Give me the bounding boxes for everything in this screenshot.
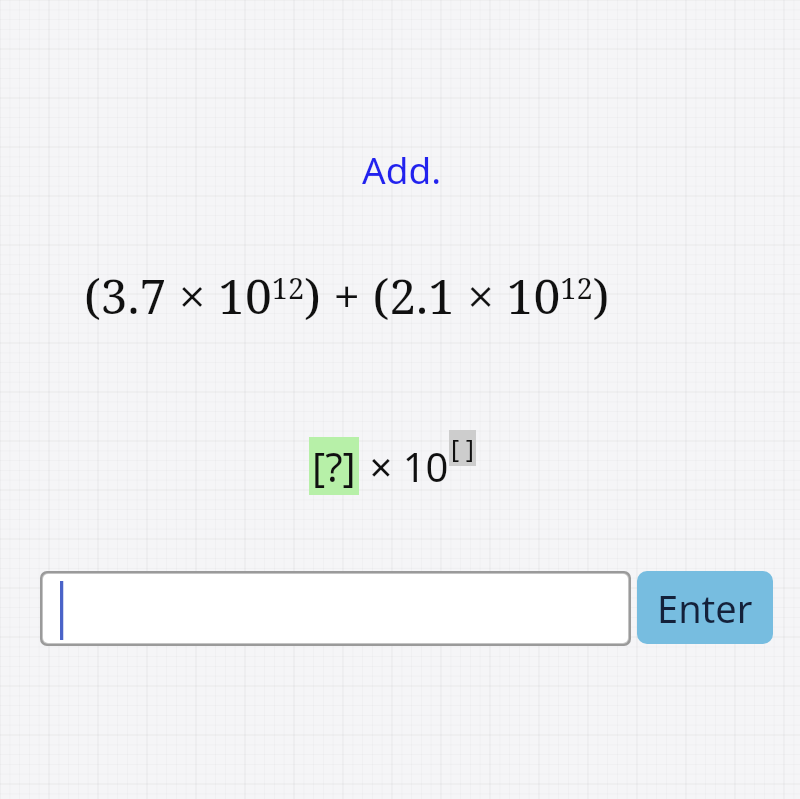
button[interactable]: Answer input field xyxy=(43,574,628,643)
staticText: [ ] xyxy=(451,431,474,465)
staticText: (3.7 × 1012) + (2.1 × 1012) xyxy=(84,263,610,328)
staticText: Enter xyxy=(657,582,753,634)
button[interactable]: Enter xyxy=(637,571,773,644)
staticText: [?] xyxy=(312,439,356,493)
staticText: Add. xyxy=(362,144,442,194)
staticText: × 10 xyxy=(359,439,449,493)
